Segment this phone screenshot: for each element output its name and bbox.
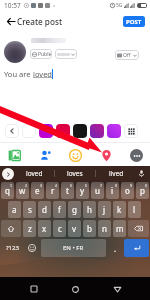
button[interactable]: c bbox=[53, 220, 66, 237]
button[interactable]: Emoji bbox=[25, 239, 39, 257]
staticText: x bbox=[42, 223, 47, 234]
button[interactable]: Feeling or activity bbox=[65, 145, 85, 165]
button[interactable]: POST bbox=[123, 16, 145, 27]
staticText: g bbox=[72, 204, 77, 215]
button[interactable]: Recent apps bbox=[26, 281, 42, 297]
button[interactable]: h bbox=[83, 201, 96, 218]
staticText: k bbox=[117, 204, 122, 215]
staticText: 10:57 bbox=[4, 1, 21, 10]
staticText: j bbox=[103, 204, 106, 215]
button[interactable]: g bbox=[68, 201, 81, 218]
button[interactable]: p bbox=[136, 182, 149, 199]
button[interactable]: No background bbox=[22, 124, 36, 138]
staticText: p bbox=[140, 185, 145, 196]
button[interactable]: Background colour bbox=[73, 124, 87, 138]
button[interactable]: x bbox=[38, 220, 51, 237]
staticText: u bbox=[95, 185, 100, 196]
button[interactable]: y bbox=[76, 182, 89, 199]
staticText: 5 bbox=[70, 183, 73, 188]
button[interactable]: Public bbox=[30, 49, 52, 59]
staticText: 9 bbox=[130, 183, 133, 188]
staticText: q bbox=[5, 185, 10, 196]
button[interactable]: Back bbox=[109, 281, 125, 297]
button[interactable]: Background colour bbox=[90, 124, 104, 138]
staticText: n bbox=[102, 223, 107, 234]
staticText: e bbox=[35, 185, 40, 196]
button[interactable]: Shift bbox=[1, 220, 21, 237]
button[interactable]: v bbox=[68, 220, 81, 237]
button[interactable]: More backgrounds bbox=[124, 124, 138, 138]
staticText: 2 bbox=[25, 183, 28, 188]
button[interactable] bbox=[55, 49, 77, 59]
staticText: r bbox=[51, 185, 55, 196]
button[interactable]: b bbox=[83, 220, 96, 237]
button[interactable]: o bbox=[121, 182, 134, 199]
button[interactable]: w bbox=[16, 182, 29, 199]
button[interactable]: z bbox=[23, 220, 36, 237]
staticText: c bbox=[58, 223, 62, 234]
staticText: 7 bbox=[100, 183, 103, 188]
button[interactable]: lived bbox=[96, 166, 136, 181]
staticText: 5G bbox=[116, 2, 123, 9]
button[interactable]: Voice input bbox=[136, 168, 147, 179]
staticText: i bbox=[111, 185, 114, 196]
staticText: loves bbox=[67, 169, 83, 178]
staticText: Create post bbox=[17, 16, 63, 27]
button[interactable]: Background colour bbox=[39, 124, 53, 138]
button[interactable]: f bbox=[53, 201, 66, 218]
button[interactable]: l bbox=[128, 201, 141, 218]
button[interactable]: . bbox=[108, 239, 122, 257]
staticText: h bbox=[87, 204, 92, 215]
button[interactable]: Photo or video bbox=[4, 145, 24, 165]
staticText: 1 bbox=[10, 183, 13, 188]
staticText: t bbox=[66, 185, 69, 196]
button[interactable]: r bbox=[46, 182, 59, 199]
button[interactable]: d bbox=[38, 201, 51, 218]
staticText: s bbox=[28, 204, 32, 215]
button[interactable]: Off bbox=[115, 50, 139, 60]
staticText: a bbox=[12, 204, 17, 215]
staticText: POST bbox=[126, 18, 142, 26]
button[interactable]: loved bbox=[14, 166, 54, 181]
staticText: z bbox=[28, 223, 32, 234]
staticText: 8 bbox=[115, 183, 118, 188]
staticText: w bbox=[19, 185, 26, 196]
button[interactable]: u bbox=[91, 182, 104, 199]
button[interactable]: Enter bbox=[124, 239, 149, 257]
button[interactable]: Background colour bbox=[107, 124, 121, 138]
staticText: loved bbox=[33, 69, 52, 79]
button[interactable]: Back bbox=[4, 15, 17, 28]
button[interactable]: loves bbox=[55, 166, 95, 181]
staticText: EN • FR bbox=[63, 244, 84, 252]
button[interactable]: m bbox=[113, 220, 126, 237]
button[interactable]: e bbox=[31, 182, 44, 199]
staticText: 3 bbox=[40, 183, 43, 188]
button[interactable]: j bbox=[98, 201, 111, 218]
button[interactable]: Profile photo bbox=[4, 41, 26, 63]
button[interactable]: q bbox=[1, 182, 14, 199]
button[interactable]: Backspace bbox=[128, 220, 149, 237]
staticText: Public bbox=[38, 51, 50, 58]
button[interactable]: s bbox=[23, 201, 36, 218]
button[interactable]: More options bbox=[126, 145, 146, 165]
button[interactable]: ?123 bbox=[1, 239, 23, 257]
button[interactable]: Home bbox=[67, 281, 83, 297]
button[interactable]: Background colour bbox=[56, 124, 70, 138]
button[interactable]: t bbox=[61, 182, 74, 199]
button[interactable]: a bbox=[8, 201, 21, 218]
staticText: m bbox=[116, 223, 124, 234]
button[interactable]: Check in bbox=[96, 145, 116, 165]
staticText: f bbox=[58, 204, 61, 215]
button[interactable]: n bbox=[98, 220, 111, 237]
button[interactable]: Tag people bbox=[35, 145, 55, 165]
button[interactable]: i bbox=[106, 182, 119, 199]
staticText: v bbox=[72, 223, 77, 234]
button[interactable]: More suggestions bbox=[2, 168, 14, 180]
staticText: ?123 bbox=[6, 244, 19, 252]
button[interactable]: Previous backgrounds bbox=[5, 124, 19, 138]
button[interactable]: k bbox=[113, 201, 126, 218]
staticText: Off bbox=[123, 52, 131, 59]
staticText: 0 bbox=[145, 183, 148, 188]
staticText: o bbox=[125, 185, 130, 196]
button[interactable]: EN • FR bbox=[41, 239, 106, 257]
